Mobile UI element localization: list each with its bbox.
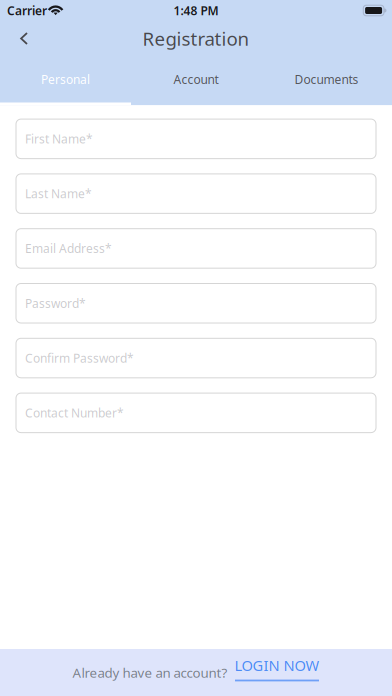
button[interactable]: Confirm Password* xyxy=(16,338,376,378)
staticText: Account xyxy=(173,71,218,87)
button[interactable]: LOGIN NOW xyxy=(227,656,319,689)
staticText: Documents xyxy=(294,71,358,87)
button[interactable]: Account xyxy=(131,56,261,102)
staticText: Email Address* xyxy=(25,240,112,256)
staticText: Contact Number* xyxy=(25,405,124,421)
staticText: Personal xyxy=(41,71,90,87)
staticText: Carrier xyxy=(7,2,47,18)
button[interactable]: Password* xyxy=(16,283,376,323)
staticText: Already have an account? xyxy=(72,664,227,681)
button[interactable]: Back xyxy=(5,21,43,55)
staticText: Password* xyxy=(25,295,86,311)
staticText: 1:48 PM xyxy=(173,2,218,18)
staticText: Confirm Password* xyxy=(25,350,134,366)
button[interactable]: Last Name* xyxy=(16,174,376,213)
button[interactable]: Documents xyxy=(261,56,392,102)
staticText: LOGIN NOW xyxy=(234,656,319,675)
button[interactable]: Contact Number* xyxy=(16,393,376,433)
staticText: First Name* xyxy=(25,131,93,147)
staticText: Last Name* xyxy=(25,186,92,202)
button[interactable]: Personal xyxy=(0,56,131,102)
button[interactable]: Email Address* xyxy=(16,229,376,268)
button[interactable]: First Name* xyxy=(16,119,376,159)
staticText: Registration xyxy=(142,26,249,51)
